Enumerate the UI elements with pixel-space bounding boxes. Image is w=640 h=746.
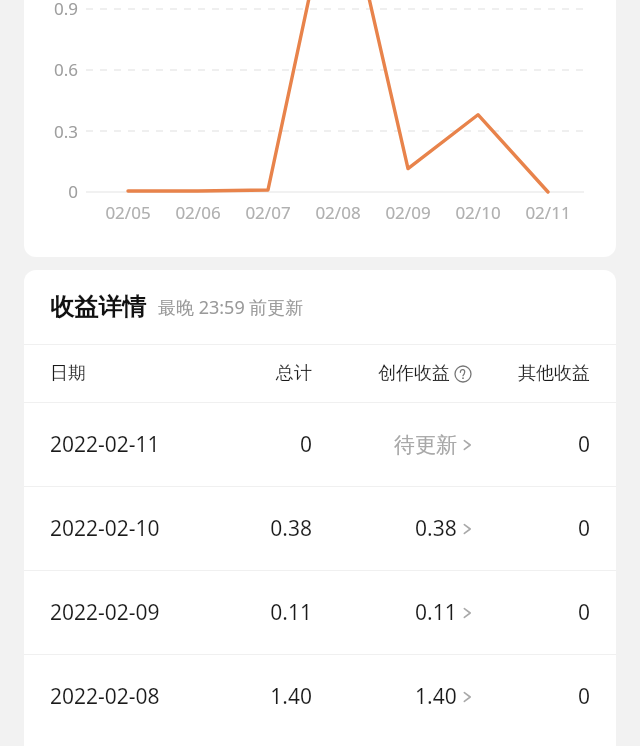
staticText: 0 xyxy=(460,682,590,711)
staticText: 02/08 xyxy=(303,201,373,224)
staticText: 0.6 xyxy=(32,58,78,81)
staticText: 1.40 xyxy=(415,682,457,711)
other: 查看详情 xyxy=(463,689,472,705)
staticText: 1.40 xyxy=(212,682,312,711)
staticText: 日期 xyxy=(50,362,86,385)
staticText: 0 xyxy=(460,598,590,627)
staticText: 2022-02-09 xyxy=(50,598,160,627)
staticText: 0.9 xyxy=(32,0,78,20)
staticText: 02/07 xyxy=(233,201,303,224)
other: 查看详情 xyxy=(463,605,472,621)
staticText: 02/05 xyxy=(93,201,163,224)
staticText: 0.3 xyxy=(32,120,78,143)
staticText: 0.11 xyxy=(212,598,312,627)
staticText: 待更新 xyxy=(394,432,457,458)
button[interactable]: 2022-02-10 xyxy=(24,487,616,570)
staticText: 02/10 xyxy=(443,201,513,224)
staticText: 0 xyxy=(460,430,590,459)
staticText: 0 xyxy=(212,430,312,459)
staticText: 0 xyxy=(32,180,78,203)
other: 查看详情 xyxy=(463,521,472,537)
staticText: 0.11 xyxy=(415,598,457,627)
staticText: 0 xyxy=(460,514,590,543)
staticText: 2022-02-08 xyxy=(50,682,160,711)
staticText: 最晚 23:59 前更新 xyxy=(158,295,304,320)
staticText: 其他收益 xyxy=(460,362,590,385)
button[interactable]: 2022-02-08 xyxy=(24,655,616,738)
staticText: 02/06 xyxy=(163,201,233,224)
button[interactable]: 日期 xyxy=(24,345,616,402)
button[interactable]: 2022-02-11 xyxy=(24,403,616,486)
staticText: 0.38 xyxy=(415,514,457,543)
staticText: 创作收益 xyxy=(378,362,450,385)
staticText: 0.38 xyxy=(212,514,312,543)
other: 帮助 xyxy=(454,365,472,383)
staticText: 总计 xyxy=(212,362,312,385)
staticText: 2022-02-11 xyxy=(50,430,160,459)
button[interactable]: 2022-02-09 xyxy=(24,571,616,654)
other: 查看详情 xyxy=(463,437,472,453)
staticText: 收益详情 xyxy=(50,292,146,322)
staticText: 02/11 xyxy=(513,201,583,224)
staticText: 2022-02-10 xyxy=(50,514,160,543)
staticText: 02/09 xyxy=(373,201,443,224)
